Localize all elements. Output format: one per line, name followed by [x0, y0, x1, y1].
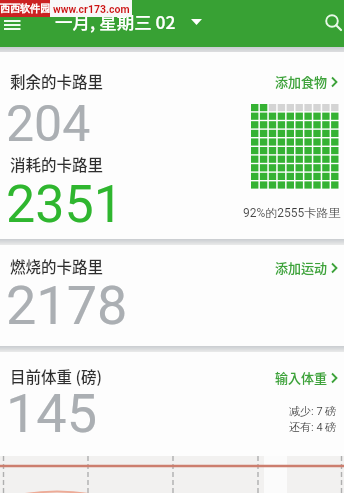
- button[interactable]: 一月, 星期三 02: [55, 0, 203, 45]
- staticText: 剩余的卡路里: [10, 70, 104, 92]
- staticText: 减少: 7 磅: [289, 404, 337, 418]
- staticText: 西西软件园: [0, 2, 50, 15]
- staticText: 92%的2555卡路里: [243, 205, 341, 220]
- staticText: 燃烧的卡路里: [10, 255, 104, 277]
- staticText: 输入体重: [275, 368, 328, 387]
- staticText: 2351: [6, 174, 123, 235]
- staticText: 添加食物: [275, 72, 328, 91]
- button[interactable]: 添加食物: [275, 72, 338, 91]
- button[interactable]: 添加运动: [275, 258, 338, 277]
- staticText: 204: [6, 95, 91, 154]
- button[interactable]: 输入体重: [275, 368, 338, 387]
- staticText: 目前体重 (磅): [10, 365, 103, 387]
- staticText: www.cr173.com: [53, 3, 130, 15]
- staticText: 2178: [6, 274, 128, 337]
- button[interactable]: [321, 10, 343, 32]
- button[interactable]: [4, 20, 22, 32]
- staticText: 145: [6, 382, 98, 445]
- staticText: 还有: 4 磅: [289, 420, 337, 434]
- staticText: 一月, 星期三 02: [55, 9, 176, 34]
- staticText: 消耗的卡路里: [10, 153, 104, 175]
- staticText: 添加运动: [275, 258, 328, 277]
